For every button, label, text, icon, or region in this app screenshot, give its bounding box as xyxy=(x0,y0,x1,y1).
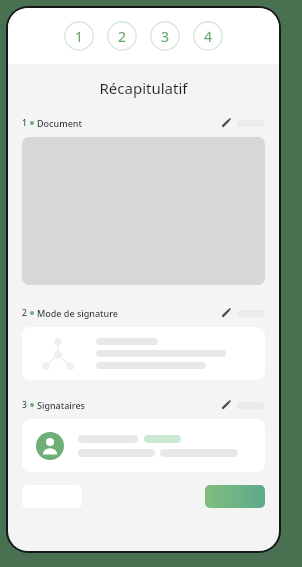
button[interactable]: 4 xyxy=(193,21,223,51)
button[interactable]: 1 xyxy=(22,116,265,130)
button[interactable]: 2 xyxy=(107,21,137,51)
staticText: 3 xyxy=(161,27,170,46)
button[interactable]: 2 xyxy=(22,306,265,320)
staticText: 2 xyxy=(118,27,127,46)
staticText: Signataires xyxy=(37,399,85,411)
staticText: Mode de signature xyxy=(37,307,118,319)
staticText: 4 xyxy=(204,27,213,46)
button[interactable]: 1 xyxy=(64,21,94,51)
staticText: 1 xyxy=(75,27,84,46)
staticText: Document xyxy=(37,117,82,129)
button[interactable]: Modifier xyxy=(219,116,233,130)
staticText: Récapitulatif xyxy=(8,78,279,98)
button[interactable]: Modifier xyxy=(219,398,233,412)
button[interactable] xyxy=(205,485,265,508)
button[interactable] xyxy=(22,327,265,380)
staticText: 1 xyxy=(22,117,27,129)
button[interactable]: 3 xyxy=(150,21,180,51)
button[interactable]: Modifier xyxy=(219,306,233,320)
staticText: 2 xyxy=(22,307,27,319)
button[interactable] xyxy=(22,419,265,472)
staticText: 3 xyxy=(22,399,27,411)
button[interactable]: 3 xyxy=(22,398,265,412)
